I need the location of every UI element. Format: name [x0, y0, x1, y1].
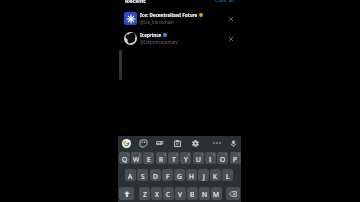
button[interactable]: T	[168, 152, 179, 164]
button[interactable]: R	[156, 152, 167, 164]
staticText: Recent	[125, 0, 146, 5]
button[interactable]: Backspace	[226, 187, 240, 200]
staticText: F	[166, 172, 170, 181]
staticText: Q	[122, 155, 128, 164]
staticText: 3	[151, 152, 153, 157]
staticText: @Ice_blockchain	[140, 19, 175, 25]
staticText: M	[213, 190, 220, 199]
button[interactable]: GIF	[153, 138, 167, 148]
button[interactable]: Remove	[225, 13, 236, 24]
staticText: R	[159, 155, 164, 164]
staticText: J	[203, 172, 205, 181]
button[interactable]: Y	[180, 152, 191, 164]
staticText: E	[147, 155, 151, 164]
button[interactable]: K	[210, 169, 221, 181]
button[interactable]: M	[211, 187, 222, 200]
staticText: K	[213, 172, 218, 181]
button[interactable]: Q	[119, 152, 130, 164]
button[interactable]: Shift	[119, 187, 134, 200]
staticText: S	[141, 172, 145, 181]
staticText: U	[196, 155, 201, 164]
staticText: B	[190, 190, 195, 199]
button[interactable]: Iceprince	[118, 28, 241, 48]
button[interactable]: Z	[139, 187, 150, 200]
staticText: 5	[176, 152, 178, 157]
button[interactable]: U	[193, 152, 204, 164]
staticText: 6	[188, 152, 190, 157]
button[interactable]: Clear all	[199, 0, 234, 4]
staticText: O	[220, 155, 226, 164]
button[interactable]: V	[175, 187, 186, 200]
button[interactable]: O	[217, 152, 228, 164]
staticText: L	[226, 172, 230, 181]
button[interactable]: N	[199, 187, 210, 200]
button[interactable]: Stickers	[138, 138, 148, 148]
staticText: Y	[184, 155, 188, 164]
staticText: W	[133, 155, 140, 164]
staticText: GIF	[156, 140, 164, 146]
button[interactable]: D	[150, 169, 161, 181]
staticText: Iceprince	[140, 32, 162, 38]
staticText: P	[233, 155, 238, 164]
button[interactable]: F	[162, 169, 173, 181]
button[interactable]: Google	[121, 138, 131, 148]
button[interactable]: C	[163, 187, 174, 200]
staticText: 0	[238, 152, 240, 157]
button[interactable]: Ice: Decentralized Future	[118, 8, 241, 28]
staticText: D	[153, 172, 158, 181]
staticText: 7	[201, 152, 203, 157]
staticText: @Iceprincezamani	[140, 39, 178, 45]
button[interactable]: Settings	[190, 138, 200, 148]
staticText: X	[155, 190, 159, 199]
button[interactable]: X	[151, 187, 162, 200]
staticText: H	[189, 172, 194, 181]
staticText: Ice: Decentralized Future	[140, 12, 198, 18]
staticText: T	[172, 155, 176, 164]
staticText: G	[177, 172, 182, 181]
button[interactable]: L	[222, 169, 233, 181]
button[interactable]: Clipboard	[172, 138, 182, 148]
button[interactable]: A	[125, 169, 136, 181]
button[interactable]: E	[143, 152, 154, 164]
button[interactable]: W	[131, 152, 142, 164]
staticText: 2	[139, 152, 141, 157]
staticText: 8	[213, 152, 215, 157]
button[interactable]: Voice input	[228, 138, 238, 148]
button[interactable]: H	[186, 169, 197, 181]
staticText: A	[128, 172, 133, 181]
button[interactable]: B	[187, 187, 198, 200]
staticText: V	[178, 190, 183, 199]
button[interactable]: More options	[211, 138, 223, 148]
button[interactable]: P	[230, 152, 241, 164]
staticText: Z	[143, 190, 147, 199]
button[interactable]: J	[198, 169, 209, 181]
staticText: Clear all	[215, 0, 234, 4]
staticText: I	[209, 155, 212, 164]
button[interactable]: Remove	[225, 33, 236, 44]
staticText: 1	[127, 152, 129, 157]
staticText: 4	[164, 152, 166, 157]
button[interactable]: I	[205, 152, 216, 164]
button[interactable]: S	[137, 169, 148, 181]
button[interactable]: G	[174, 169, 185, 181]
staticText: C	[166, 190, 171, 199]
staticText: 9	[225, 152, 227, 157]
staticText: N	[202, 190, 208, 199]
